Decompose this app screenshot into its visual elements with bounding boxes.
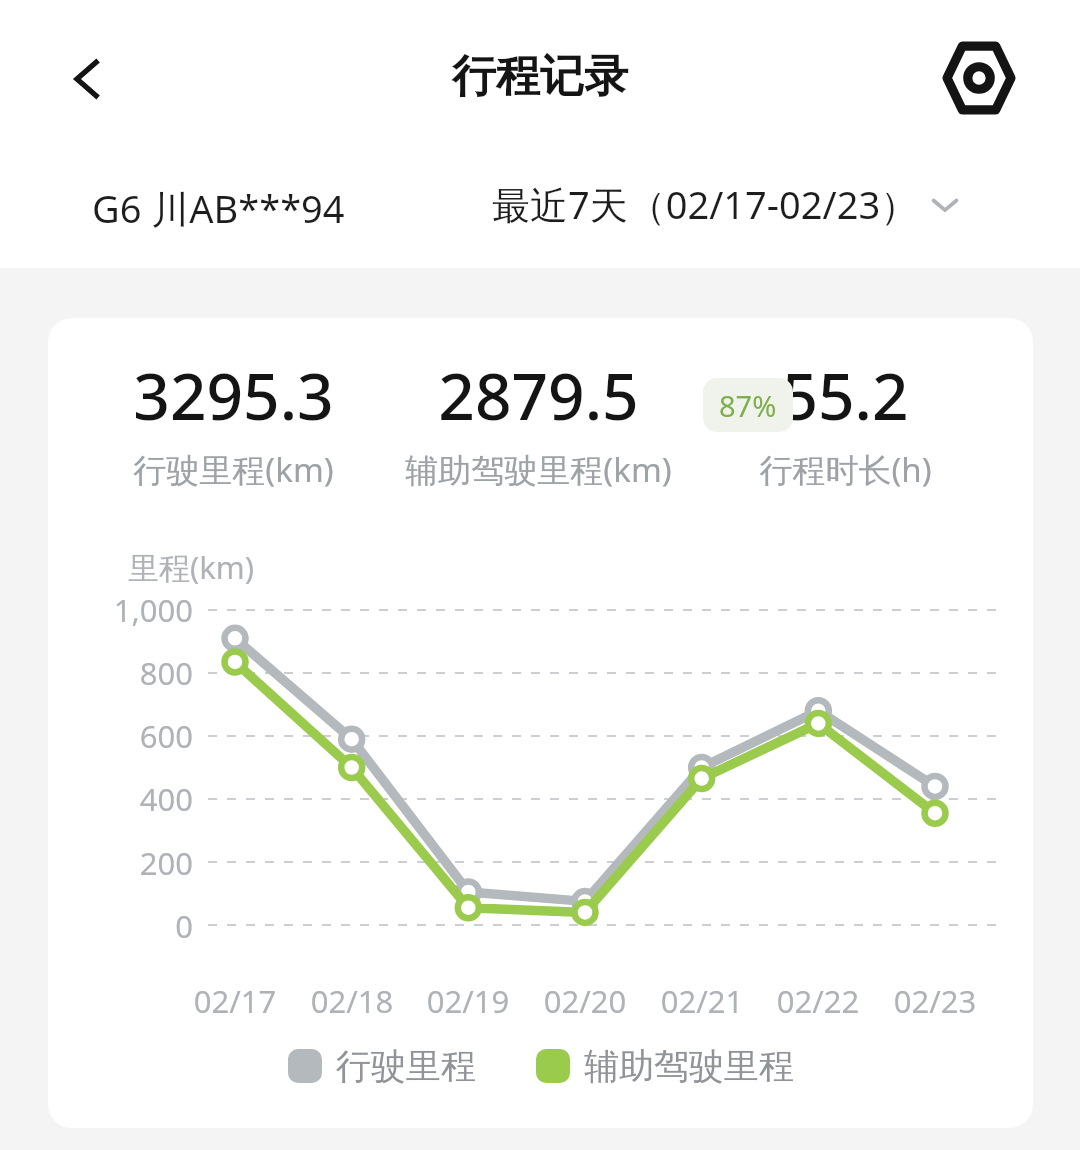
staticText: 02/21 xyxy=(642,980,762,1022)
staticText: 行程记录 xyxy=(0,49,1080,104)
button[interactable]: 2879.5 xyxy=(358,352,718,492)
staticText: 3295.3 xyxy=(133,352,334,439)
button[interactable]: Back xyxy=(42,33,134,125)
button[interactable]: 3295.3 xyxy=(53,352,413,492)
staticText: 02/22 xyxy=(758,980,878,1022)
button[interactable]: 最近7天（02/17-02/23） xyxy=(492,178,967,230)
staticText: 02/17 xyxy=(175,980,295,1022)
staticText: 行驶里程 xyxy=(336,1044,476,1088)
staticText: 800 xyxy=(48,652,193,694)
button[interactable]: Settings xyxy=(932,31,1026,125)
staticText: 1,000 xyxy=(48,589,193,631)
staticText: 02/20 xyxy=(525,980,645,1022)
staticText: 行程时长(h) xyxy=(759,447,932,492)
button[interactable]: 行驶里程 xyxy=(288,1044,476,1088)
staticText: 600 xyxy=(48,715,193,757)
staticText: 200 xyxy=(48,842,193,884)
staticText: 0 xyxy=(48,905,193,947)
button[interactable]: G6 川AB***94 xyxy=(92,182,345,234)
staticText: 辅助驾驶里程(km) xyxy=(405,447,672,492)
staticText: 02/19 xyxy=(408,980,528,1022)
staticText: 行驶里程(km) xyxy=(133,447,334,492)
staticText: 里程(km) xyxy=(128,546,255,588)
staticText: 2879.5 xyxy=(438,352,639,439)
staticText: 55.2 xyxy=(781,352,909,439)
staticText: 02/23 xyxy=(875,980,995,1022)
staticText: 辅助驾驶里程 xyxy=(584,1044,794,1088)
button[interactable]: 辅助驾驶里程 xyxy=(536,1044,794,1088)
button[interactable]: 55.2 xyxy=(665,352,1025,492)
staticText: 87% xyxy=(719,386,777,425)
staticText: 最近7天（02/17-02/23） xyxy=(492,178,919,230)
staticText: 400 xyxy=(48,778,193,820)
staticText: 02/18 xyxy=(292,980,412,1022)
